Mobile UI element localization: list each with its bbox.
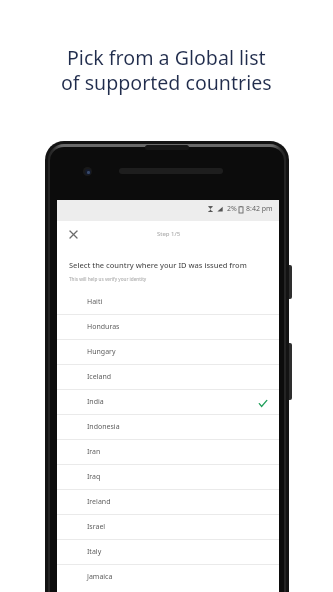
button[interactable]: Haiti [57, 290, 279, 314]
staticText: 8:42 pm [246, 204, 273, 214]
button[interactable]: Italy [57, 540, 279, 564]
button[interactable]: Israel [57, 515, 279, 539]
staticText: 2% [227, 204, 237, 214]
staticText: Iraq [87, 472, 101, 482]
staticText: Ireland [87, 497, 111, 507]
staticText: Honduras [87, 322, 120, 332]
staticText: Hungary [87, 347, 116, 357]
staticText: Select the country where your ID was iss… [69, 260, 247, 270]
button[interactable]: Iceland [57, 365, 279, 389]
staticText: Israel [87, 522, 106, 532]
staticText: Iran [87, 447, 101, 457]
button[interactable]: Hungary [57, 340, 279, 364]
staticText: Italy [87, 547, 102, 557]
button[interactable]: Jamaica [57, 565, 279, 589]
staticText: Step 1/5 [157, 230, 181, 238]
button[interactable]: Iraq [57, 465, 279, 489]
staticText: Iceland [87, 372, 112, 382]
staticText: This will help us verify your identity [69, 276, 147, 282]
button[interactable]: Close [66, 227, 80, 241]
staticText: India [87, 397, 104, 407]
staticText: of supported countries [61, 69, 272, 96]
staticText: Indonesia [87, 422, 120, 432]
staticText: Jamaica [87, 572, 113, 582]
staticText: Haiti [87, 297, 103, 307]
button[interactable]: Iran [57, 440, 279, 464]
button[interactable]: India [57, 390, 279, 414]
staticText: Pick from a Global list [67, 44, 266, 71]
button[interactable]: Ireland [57, 490, 279, 514]
button[interactable]: Honduras [57, 315, 279, 339]
button[interactable]: Indonesia [57, 415, 279, 439]
